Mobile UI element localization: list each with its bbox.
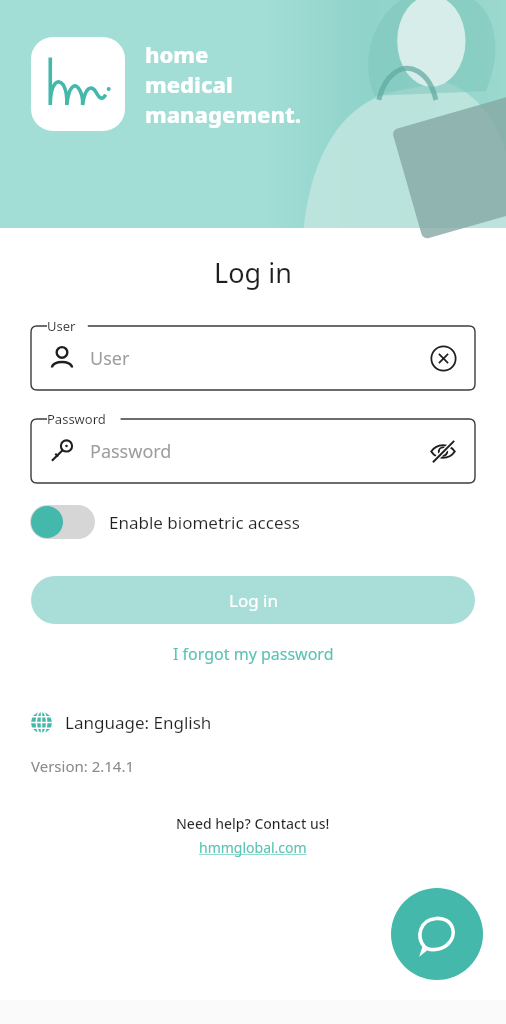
- staticText: management.: [145, 99, 302, 129]
- button[interactable]: Password: [31, 410, 475, 483]
- staticText: Enable biometric access: [109, 511, 300, 534]
- staticText: home: [145, 39, 209, 69]
- staticText: Log in: [229, 589, 278, 612]
- button[interactable]: User: [31, 317, 475, 390]
- staticText: Password: [90, 439, 428, 464]
- staticText: Password: [47, 410, 106, 428]
- staticText: I forgot my password: [173, 643, 334, 665]
- button[interactable]: Enable biometric access: [30, 505, 506, 539]
- button[interactable]: Clear: [428, 343, 458, 373]
- button[interactable]: Show password: [428, 436, 458, 466]
- staticText: hmmglobal.com: [199, 838, 307, 857]
- button[interactable]: hmmglobal.com: [199, 838, 307, 857]
- button[interactable]: I forgot my password: [0, 643, 506, 665]
- staticText: Version: 2.14.1: [31, 756, 135, 776]
- staticText: medical: [145, 69, 233, 99]
- staticText: User: [90, 346, 428, 371]
- staticText: Need help? Contact us!: [176, 814, 330, 833]
- button[interactable]: Log in: [31, 576, 475, 624]
- staticText: User: [47, 317, 76, 335]
- staticText: Language: English: [65, 711, 212, 734]
- button[interactable]: Language: English: [30, 711, 506, 734]
- staticText: Log in: [0, 254, 506, 291]
- button[interactable]: Chat with support: [391, 888, 483, 980]
